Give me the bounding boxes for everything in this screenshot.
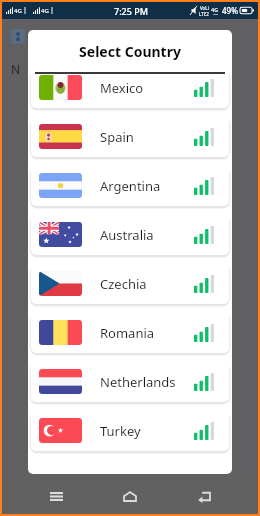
staticText: 7:25 PM [114, 5, 148, 17]
staticText: Czechia [100, 275, 147, 293]
staticText: Mexico [100, 79, 144, 97]
staticText: 4G [14, 7, 22, 15]
button[interactable]: Spain [31, 116, 229, 157]
staticText: LTE2 [199, 11, 209, 17]
button[interactable]: Romania [31, 312, 229, 353]
button[interactable]: Recent apps [36, 477, 76, 516]
button[interactable]: Mexico [31, 74, 229, 108]
staticText: VoLi [200, 5, 209, 11]
staticText: Netherlands [100, 373, 176, 391]
staticText: 49% [222, 5, 238, 16]
staticText: 4G [211, 6, 219, 13]
staticText: Select Country [79, 42, 181, 61]
button[interactable]: Netherlands [31, 361, 229, 402]
staticText: Australia [100, 226, 154, 244]
button[interactable]: Argentina [31, 165, 229, 206]
button[interactable]: Australia [31, 214, 229, 255]
staticText: Argentina [100, 177, 161, 195]
staticText: Turkey [100, 422, 141, 440]
button[interactable]: Back [184, 477, 224, 516]
button[interactable]: Home [110, 477, 150, 516]
button[interactable]: Czechia [31, 263, 229, 304]
staticText: N [11, 61, 21, 77]
button[interactable]: Turkey [31, 410, 229, 451]
staticText: 4G [41, 7, 49, 15]
staticText: Spain [100, 128, 134, 146]
staticText: Romania [100, 324, 155, 342]
